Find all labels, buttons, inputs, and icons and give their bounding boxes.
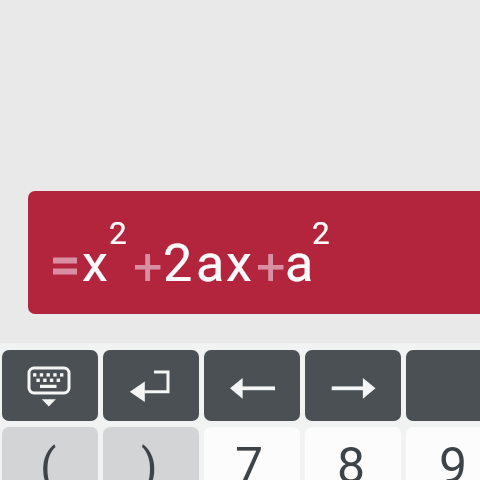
staticText: )	[141, 438, 158, 480]
button[interactable]	[103, 427, 199, 480]
button[interactable]	[2, 427, 98, 480]
staticText: 7	[235, 437, 264, 480]
button[interactable]	[204, 427, 300, 480]
staticText: +	[256, 237, 286, 298]
staticText: x	[226, 233, 252, 294]
button[interactable]	[305, 427, 401, 480]
staticText: 2	[163, 233, 193, 294]
staticText: 2	[109, 215, 127, 252]
button[interactable]	[204, 350, 300, 421]
staticText: 9	[439, 437, 468, 480]
staticText: 8	[337, 437, 366, 480]
staticText: a	[196, 233, 225, 294]
button[interactable]	[2, 350, 98, 421]
button[interactable]	[305, 350, 401, 421]
staticText: x	[82, 233, 108, 294]
button[interactable]	[406, 427, 480, 480]
button[interactable]	[406, 350, 480, 421]
staticText: 2	[312, 215, 330, 252]
staticText: +	[133, 237, 163, 298]
button[interactable]	[28, 191, 480, 314]
button[interactable]	[103, 350, 199, 421]
staticText: a	[285, 233, 314, 294]
staticText: (	[40, 438, 57, 480]
